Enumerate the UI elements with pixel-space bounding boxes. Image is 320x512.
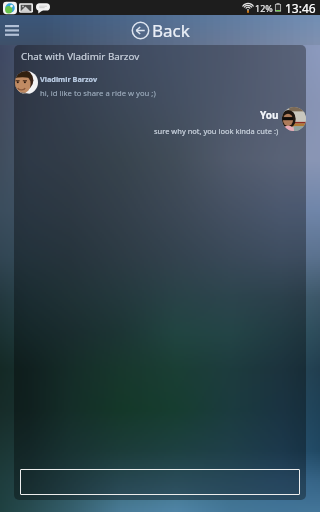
- staticText: hi, id like to share a ride w you ;): [40, 88, 156, 98]
- staticText: Back: [152, 19, 190, 42]
- button[interactable]: Back: [131, 19, 190, 42]
- staticText: 12%: [255, 2, 273, 14]
- staticText: You: [260, 108, 279, 122]
- staticText: Vladimir Barzov: [40, 74, 98, 84]
- staticText: sure why not, you look kinda cute :): [154, 126, 279, 136]
- button[interactable]: Menu: [1, 19, 23, 41]
- button[interactable]: Message input: [20, 469, 300, 495]
- staticText: 13:46: [285, 0, 316, 15]
- staticText: Chat with Vladimir Barzov: [21, 50, 140, 63]
